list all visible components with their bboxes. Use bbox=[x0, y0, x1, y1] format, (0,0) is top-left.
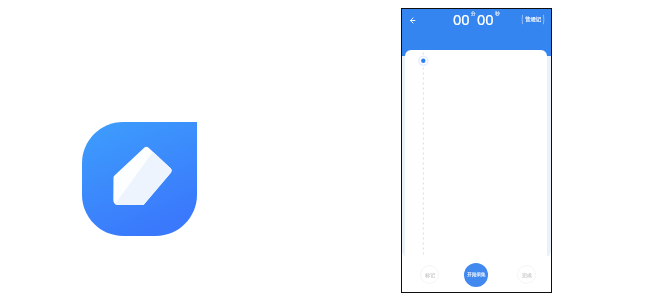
staticText: 秒 bbox=[495, 11, 500, 17]
button[interactable]: 标记 bbox=[420, 265, 439, 284]
staticText: 分 bbox=[471, 11, 476, 17]
staticText: 00 bbox=[477, 9, 494, 29]
staticText: 完成 bbox=[522, 272, 532, 278]
button[interactable]: 普通记 bbox=[520, 14, 546, 25]
button[interactable]: Back bbox=[407, 15, 418, 26]
staticText: 普通记 bbox=[525, 16, 542, 23]
staticText: 标记 bbox=[425, 272, 435, 278]
button[interactable]: 完成 bbox=[517, 265, 536, 284]
staticText: 开始采集 bbox=[467, 272, 486, 278]
staticText: 00 bbox=[453, 9, 470, 29]
button[interactable]: 开始采集 bbox=[464, 263, 488, 287]
